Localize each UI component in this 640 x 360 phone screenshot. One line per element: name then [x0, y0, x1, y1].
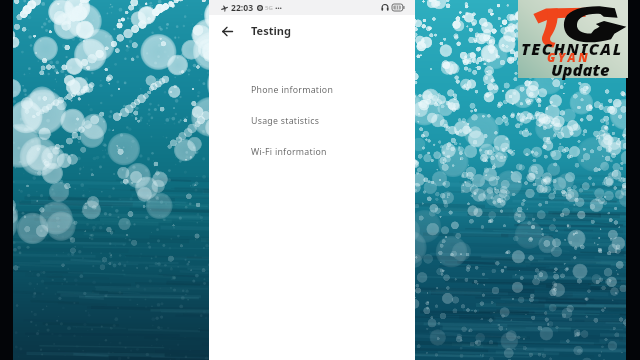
button[interactable]: Wi-Fi information — [209, 136, 415, 167]
staticText: 5G — [265, 4, 273, 12]
button[interactable]: Usage statistics — [209, 105, 415, 136]
staticText: Update — [551, 58, 610, 80]
staticText: TECHNICAL — [521, 38, 623, 60]
staticText: Testing — [251, 23, 291, 38]
button[interactable]: Phone information — [209, 74, 415, 105]
staticText: 22:03 — [231, 2, 254, 14]
staticText: Phone information — [251, 84, 334, 96]
staticText: GYAN — [547, 49, 591, 65]
staticText: Usage statistics — [251, 115, 320, 127]
button[interactable]: Back — [215, 19, 239, 43]
staticText: Wi-Fi information — [251, 146, 327, 158]
